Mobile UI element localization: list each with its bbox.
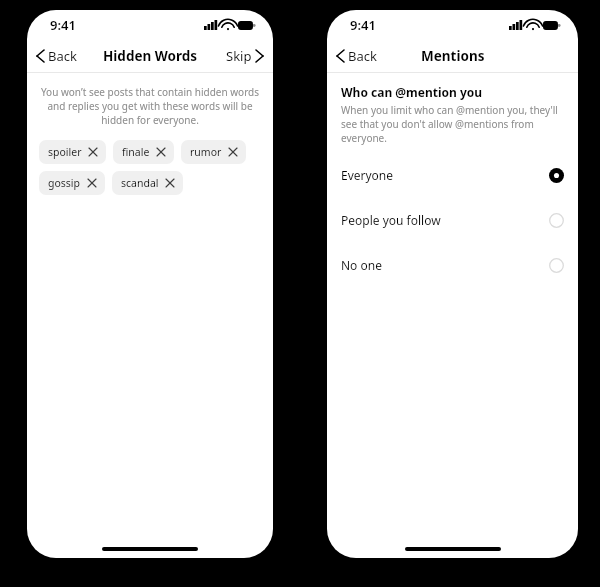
staticText: 9:41 bbox=[350, 16, 376, 34]
other: Remove gossip bbox=[88, 179, 96, 187]
staticText: No one bbox=[341, 257, 382, 273]
button[interactable]: spoiler bbox=[39, 140, 106, 164]
button[interactable]: People you follow bbox=[327, 202, 578, 238]
button[interactable]: finale bbox=[113, 140, 174, 164]
staticText: rumor bbox=[190, 145, 222, 159]
other: Remove scandal bbox=[166, 179, 174, 187]
staticText: People you follow bbox=[341, 212, 441, 228]
other: Remove finale bbox=[157, 148, 165, 156]
staticText: Skip bbox=[226, 47, 252, 65]
button[interactable]: Back bbox=[327, 43, 385, 69]
button[interactable]: Back bbox=[27, 43, 85, 69]
button[interactable]: Skip bbox=[218, 43, 273, 69]
other: Remove rumor bbox=[229, 148, 237, 156]
staticText: Hidden Words bbox=[103, 47, 198, 65]
staticText: gossip bbox=[48, 176, 81, 190]
staticText: Back bbox=[48, 47, 77, 65]
staticText: Everyone bbox=[341, 167, 394, 183]
staticText: Back bbox=[348, 47, 377, 65]
button[interactable]: rumor bbox=[181, 140, 246, 164]
staticText: finale bbox=[122, 145, 150, 159]
button[interactable]: No one bbox=[327, 247, 578, 283]
staticText: Who can @mention you bbox=[341, 84, 483, 100]
staticText: scandal bbox=[121, 176, 159, 190]
staticText: When you limit who can @mention you, the… bbox=[341, 103, 564, 145]
staticText: spoiler bbox=[48, 145, 82, 159]
staticText: Mentions bbox=[421, 47, 485, 65]
other: Remove spoiler bbox=[89, 148, 97, 156]
button[interactable]: Everyone bbox=[327, 157, 578, 193]
button[interactable]: scandal bbox=[112, 171, 183, 195]
staticText: 9:41 bbox=[50, 16, 76, 34]
staticText: You won’t see posts that contain hidden … bbox=[40, 85, 260, 127]
button[interactable]: gossip bbox=[39, 171, 105, 195]
